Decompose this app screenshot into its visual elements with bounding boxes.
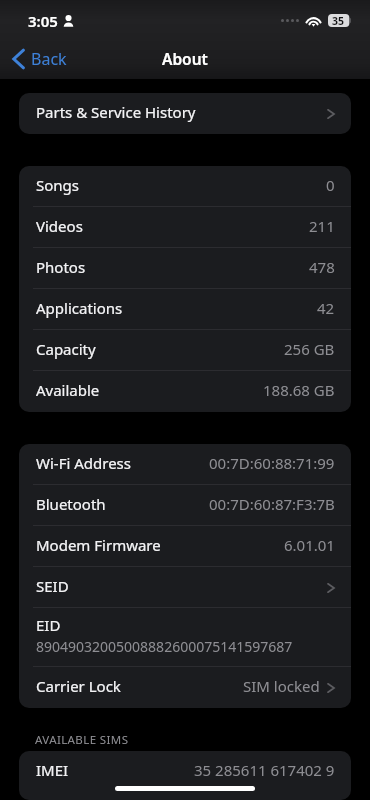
staticText: SEID bbox=[36, 576, 69, 596]
staticText: SIM locked bbox=[243, 676, 320, 696]
button[interactable]: Carrier Lock bbox=[19, 667, 351, 708]
staticText: IMEI bbox=[36, 760, 69, 780]
button[interactable]: EID bbox=[19, 608, 351, 667]
staticText: Photos bbox=[36, 257, 86, 277]
staticText: Parts & Service History bbox=[36, 102, 196, 122]
staticText: 00:7D:60:87:F3:7B bbox=[209, 494, 335, 514]
staticText: Bluetooth bbox=[36, 494, 106, 514]
staticText: 42 bbox=[317, 298, 335, 318]
staticText: 89049032005008882600075141597687 bbox=[36, 637, 293, 656]
button[interactable]: SEID bbox=[19, 567, 351, 608]
button[interactable]: Available bbox=[19, 371, 351, 412]
staticText: 188.68 GB bbox=[263, 380, 335, 400]
staticText: 0 bbox=[326, 175, 335, 195]
button[interactable]: IMEI bbox=[19, 751, 351, 792]
staticText: Carrier Lock bbox=[36, 676, 121, 696]
button[interactable]: Bluetooth bbox=[19, 485, 351, 526]
staticText: 3:05 bbox=[28, 11, 58, 31]
staticText: 478 bbox=[309, 257, 335, 277]
staticText: Applications bbox=[36, 298, 123, 318]
staticText: Back bbox=[31, 48, 67, 70]
button[interactable]: Photos bbox=[19, 248, 351, 289]
staticText: Available bbox=[36, 380, 100, 400]
staticText: 35 bbox=[332, 14, 345, 27]
staticText: About bbox=[162, 48, 208, 69]
staticText: Capacity bbox=[36, 339, 96, 359]
button[interactable]: Songs bbox=[19, 166, 351, 207]
staticText: EID bbox=[36, 615, 61, 635]
button[interactable]: Capacity bbox=[19, 330, 351, 371]
staticText: Wi-Fi Address bbox=[36, 453, 131, 473]
staticText: AVAILABLE SIMS bbox=[35, 732, 129, 748]
staticText: 6.01.01 bbox=[284, 535, 335, 555]
staticText: 256 GB bbox=[284, 339, 335, 359]
button[interactable]: Back bbox=[10, 44, 69, 74]
staticText: Songs bbox=[36, 175, 79, 195]
staticText: 35 285611 617402 9 bbox=[194, 760, 335, 780]
button[interactable]: Wi-Fi Address bbox=[19, 444, 351, 485]
button[interactable]: Applications bbox=[19, 289, 351, 330]
button[interactable]: Parts & Service History bbox=[19, 93, 351, 134]
staticText: 211 bbox=[309, 216, 335, 236]
staticText: Videos bbox=[36, 216, 83, 236]
staticText: Modem Firmware bbox=[36, 535, 161, 555]
button[interactable]: Modem Firmware bbox=[19, 526, 351, 567]
button[interactable]: Videos bbox=[19, 207, 351, 248]
staticText: 00:7D:60:88:71:99 bbox=[209, 453, 335, 473]
